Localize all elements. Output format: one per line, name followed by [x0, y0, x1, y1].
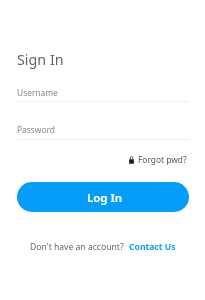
staticText: Password: [17, 124, 55, 135]
staticText: Sign In: [17, 50, 64, 69]
staticText: Contact Us: [129, 241, 176, 253]
button[interactable]: Contact Us: [129, 241, 176, 253]
staticText: Forgot pwd?: [138, 154, 187, 165]
staticText: Username: [17, 87, 58, 98]
button[interactable]: Forgot password: [129, 154, 187, 165]
staticText: Log In: [87, 190, 123, 206]
staticText: Don't have an account?: [30, 241, 124, 253]
button[interactable]: Password: [17, 122, 189, 140]
other: Forgot password: [129, 156, 134, 164]
button[interactable]: Username: [17, 85, 189, 102]
button[interactable]: Log In: [17, 182, 189, 212]
